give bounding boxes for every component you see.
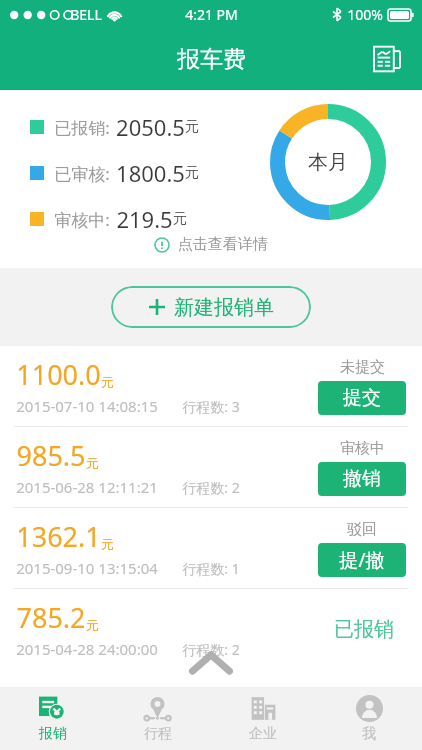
staticText: 企业 — [249, 725, 277, 743]
staticText: 驳回 — [347, 520, 377, 539]
staticText: 报销 — [39, 725, 67, 743]
staticText: 1800.5 — [116, 158, 185, 188]
staticText: 785.2 — [16, 599, 86, 636]
staticText: 报车费 — [177, 45, 246, 74]
button[interactable]: 785.2 — [0, 589, 422, 669]
staticText: 2015-07-10 14:08:15 — [16, 396, 158, 416]
staticText: 1100.0 — [16, 356, 101, 393]
button[interactable]: 行程 — [105, 687, 210, 750]
button[interactable]: 985.5 — [0, 427, 422, 507]
staticText: 已审核: — [54, 162, 110, 185]
staticText: 元 — [185, 118, 199, 136]
staticText: 4:21 PM — [185, 5, 238, 24]
staticText: 点击查看详情 — [178, 235, 268, 254]
staticText: 行程数: 1 — [182, 559, 240, 578]
staticText: 2015-04-28 24:00:00 — [16, 639, 158, 659]
staticText: 元 — [86, 617, 99, 633]
button[interactable]: 撤销 — [318, 462, 406, 496]
staticText: 1362.1 — [16, 518, 101, 555]
staticText: 元 — [173, 210, 187, 228]
staticText: 新建报销单 — [174, 295, 274, 320]
staticText: 行程数: 2 — [182, 478, 240, 497]
staticText: 2015-06-28 12:11:21 — [16, 477, 158, 497]
staticText: 2015-09-10 13:15:04 — [16, 558, 158, 578]
button[interactable]: 新建报销单 — [111, 286, 311, 328]
staticText: 985.5 — [16, 437, 86, 474]
button[interactable]: 提交 — [318, 381, 406, 415]
staticText: 提交 — [343, 386, 381, 410]
staticText: 2050.5 — [116, 112, 185, 142]
button[interactable]: 1362.1 — [0, 508, 422, 588]
staticText: 已报销 — [334, 617, 394, 642]
button[interactable]: 企业 — [210, 687, 316, 750]
staticText: BELL — [70, 5, 102, 24]
staticText: 元 — [185, 164, 199, 182]
button[interactable]: 1100.0 — [0, 346, 422, 426]
staticText: 元 — [86, 455, 99, 471]
staticText: 元 — [101, 536, 114, 552]
staticText: 未提交 — [340, 358, 385, 377]
staticText: 行程数: 3 — [182, 397, 240, 416]
staticText: 我 — [362, 725, 376, 743]
button[interactable]: 提/撤 — [318, 543, 406, 577]
button[interactable]: 我 — [316, 687, 422, 750]
button[interactable]: 已报销: — [0, 90, 422, 268]
staticText: 已报销: — [54, 116, 110, 139]
staticText: 提/撤 — [339, 547, 385, 573]
button[interactable]: 报销 — [0, 687, 105, 750]
staticText: 元 — [101, 374, 114, 390]
staticText: 219.5 — [116, 204, 173, 234]
staticText: 本月 — [308, 150, 348, 175]
staticText: 100% — [347, 5, 383, 24]
staticText: 撤销 — [343, 467, 381, 491]
staticText: 审核中 — [340, 439, 385, 458]
other: Collapse — [189, 651, 233, 673]
button[interactable]: Reports — [366, 38, 408, 80]
staticText: 审核中: — [54, 208, 110, 231]
staticText: 行程数: 2 — [182, 640, 240, 659]
staticText: 行程 — [144, 725, 172, 743]
